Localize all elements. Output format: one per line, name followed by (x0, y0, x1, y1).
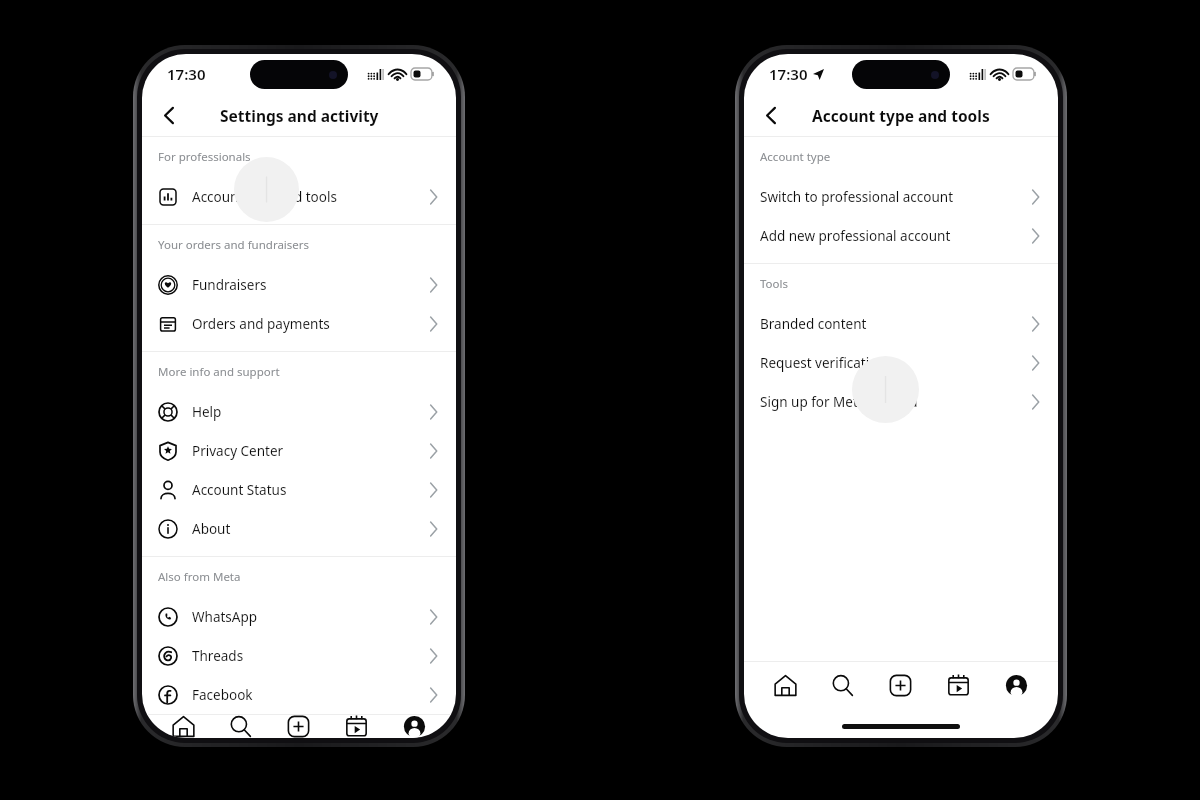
button[interactable]: Home (757, 662, 814, 708)
button[interactable]: WhatsApp (142, 597, 456, 636)
button[interactable]: About (142, 509, 456, 548)
button[interactable]: Request verification (744, 343, 1058, 382)
staticText: Sign up for Meta Verified (760, 393, 1031, 411)
staticText: Settings and activity (220, 105, 379, 126)
staticText: Your orders and fundraisers (158, 237, 310, 253)
button[interactable]: Back (149, 95, 189, 135)
button[interactable]: Back (751, 95, 791, 135)
button[interactable]: Switch to professional account (744, 177, 1058, 216)
button[interactable]: Fundraisers (142, 265, 456, 304)
button[interactable]: Home (155, 715, 212, 738)
staticText: Tools (760, 276, 788, 292)
button[interactable]: Privacy Center (142, 431, 456, 470)
staticText: Branded content (760, 315, 1031, 333)
button[interactable]: Orders and payments (142, 304, 456, 343)
button[interactable]: Threads (142, 636, 456, 675)
staticText: Account type and tools (192, 188, 429, 206)
staticText: Account type and tools (812, 105, 990, 126)
staticText: Privacy Center (192, 442, 429, 460)
button[interactable]: Profile (385, 715, 443, 738)
button[interactable]: Reels (929, 662, 987, 708)
staticText: Add new professional account (760, 227, 1031, 245)
button[interactable]: Account Status (142, 470, 456, 509)
button[interactable]: Help (142, 392, 456, 431)
staticText: For professionals (158, 149, 251, 165)
button[interactable]: Sign up for Meta Verified (744, 382, 1058, 421)
button[interactable]: Reels (327, 715, 385, 738)
staticText: Orders and payments (192, 315, 429, 333)
staticText: Switch to professional account (760, 188, 1031, 206)
button[interactable]: Facebook (142, 675, 456, 714)
staticText: Facebook (192, 686, 429, 704)
button[interactable]: Search (212, 715, 269, 738)
button[interactable]: Profile (987, 662, 1045, 708)
staticText: Also from Meta (158, 569, 241, 585)
staticText: Account type (760, 149, 831, 165)
staticText: Help (192, 403, 429, 421)
button[interactable]: Search (814, 662, 871, 708)
button[interactable]: Create (871, 662, 929, 708)
staticText: WhatsApp (192, 608, 429, 626)
staticText: 17:30 (769, 64, 808, 84)
staticText: About (192, 520, 429, 538)
button[interactable]: Add new professional account (744, 216, 1058, 255)
staticText: Request verification (760, 354, 1031, 372)
button[interactable]: Branded content (744, 304, 1058, 343)
button[interactable]: Account type and tools (142, 177, 456, 216)
staticText: More info and support (158, 364, 280, 380)
staticText: Fundraisers (192, 276, 429, 294)
staticText: Threads (192, 647, 429, 665)
staticText: Account Status (192, 481, 429, 499)
staticText: 17:30 (167, 64, 206, 84)
button[interactable]: Create (269, 715, 327, 738)
